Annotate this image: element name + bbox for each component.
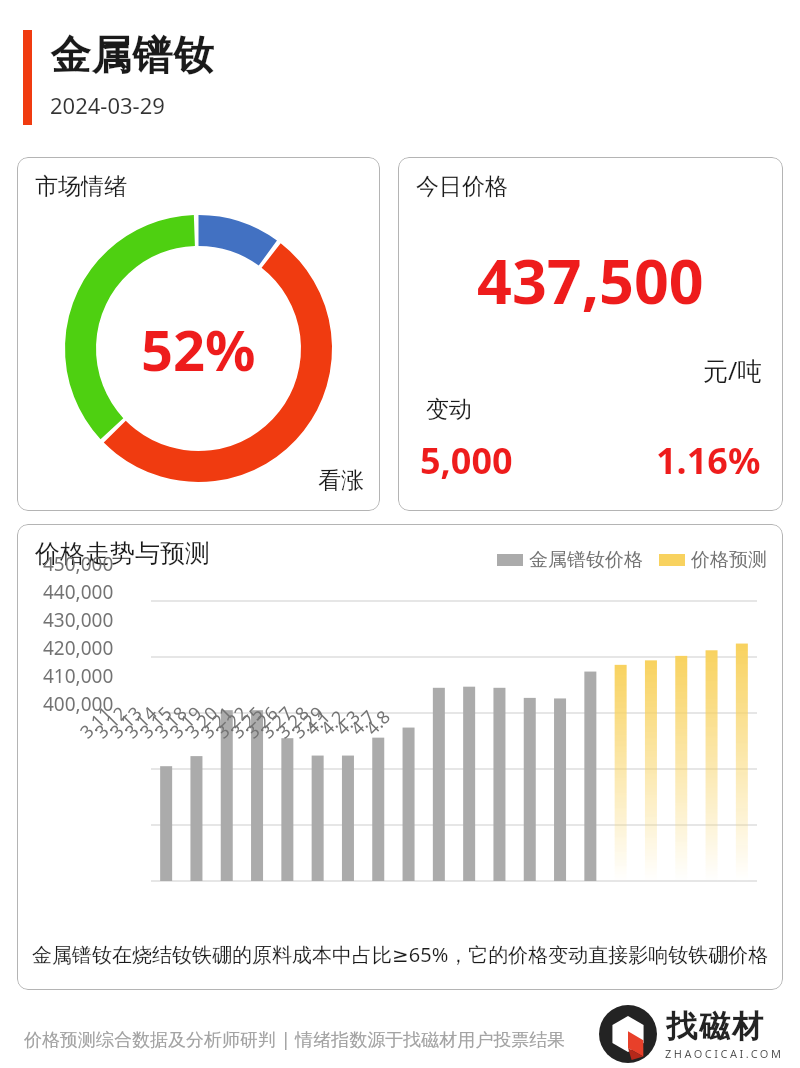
staticText: 437,500 bbox=[477, 239, 704, 322]
staticText: 找磁材 bbox=[665, 1007, 764, 1046]
staticText: 今日价格 bbox=[416, 172, 508, 201]
staticText: 3.20 bbox=[180, 701, 223, 744]
staticText: 1.16% bbox=[656, 436, 761, 485]
staticText: 价格走势与预测 bbox=[35, 538, 210, 569]
staticText: ZHAOCICAI.COM bbox=[665, 1046, 784, 1061]
staticText: 3.18 bbox=[149, 701, 192, 744]
staticText: 400,000 bbox=[43, 691, 114, 717]
staticText: 420,000 bbox=[43, 635, 114, 661]
staticText: 变动 bbox=[426, 395, 472, 424]
staticText: 2024-03-29 bbox=[50, 90, 165, 120]
staticText: 430,000 bbox=[43, 607, 114, 633]
staticText: 440,000 bbox=[43, 579, 114, 605]
staticText: 3.29 bbox=[286, 701, 329, 744]
button[interactable]: 找磁材 ZHAOCICAI.COM bbox=[599, 1005, 784, 1063]
staticText: 3.12 bbox=[89, 701, 132, 744]
staticText: 3.13 bbox=[104, 701, 147, 744]
staticText: 3.22 bbox=[210, 701, 253, 744]
staticText: 3.21 bbox=[195, 701, 238, 744]
staticText: 3.15 bbox=[134, 701, 177, 744]
staticText: 3.11 bbox=[74, 701, 117, 744]
staticText: 元/吨 bbox=[703, 353, 763, 387]
staticText: 3.14 bbox=[119, 701, 162, 744]
staticText: 价格预测综合数据及分析师研判 | 情绪指数源于找磁材用户投票结果 bbox=[24, 1027, 566, 1052]
button[interactable]: 市场情绪 bbox=[17, 157, 380, 511]
staticText: 450,000 bbox=[43, 551, 114, 577]
staticText: 3.26 bbox=[240, 701, 283, 744]
staticText: 市场情绪 bbox=[35, 172, 127, 201]
staticText: 4.2 bbox=[315, 704, 351, 741]
staticText: 52% bbox=[141, 311, 256, 387]
staticText: 金属镨钕 bbox=[50, 30, 214, 80]
button[interactable]: 今日价格 bbox=[398, 157, 783, 511]
staticText: 价格预测 bbox=[691, 548, 767, 572]
staticText: 看涨 bbox=[318, 466, 364, 495]
staticText: 3.25 bbox=[225, 701, 268, 744]
button[interactable]: 价格走势与预测 bbox=[17, 524, 783, 990]
staticText: 4.7 bbox=[345, 704, 381, 741]
staticText: 5,000 bbox=[420, 436, 513, 485]
staticText: 金属镨钕在烧结钕铁硼的原料成本中占比≥65%，它的价格变动直接影响钕铁硼价格 bbox=[32, 941, 769, 968]
staticText: 410,000 bbox=[43, 663, 114, 689]
staticText: 4.8 bbox=[360, 704, 396, 741]
staticText: 4.1 bbox=[300, 704, 336, 741]
staticText: 3.28 bbox=[271, 701, 314, 744]
staticText: 3.19 bbox=[164, 701, 207, 744]
staticText: 3.27 bbox=[255, 701, 298, 744]
staticText: 4.3 bbox=[330, 704, 366, 741]
staticText: 金属镨钕价格 bbox=[529, 548, 643, 572]
